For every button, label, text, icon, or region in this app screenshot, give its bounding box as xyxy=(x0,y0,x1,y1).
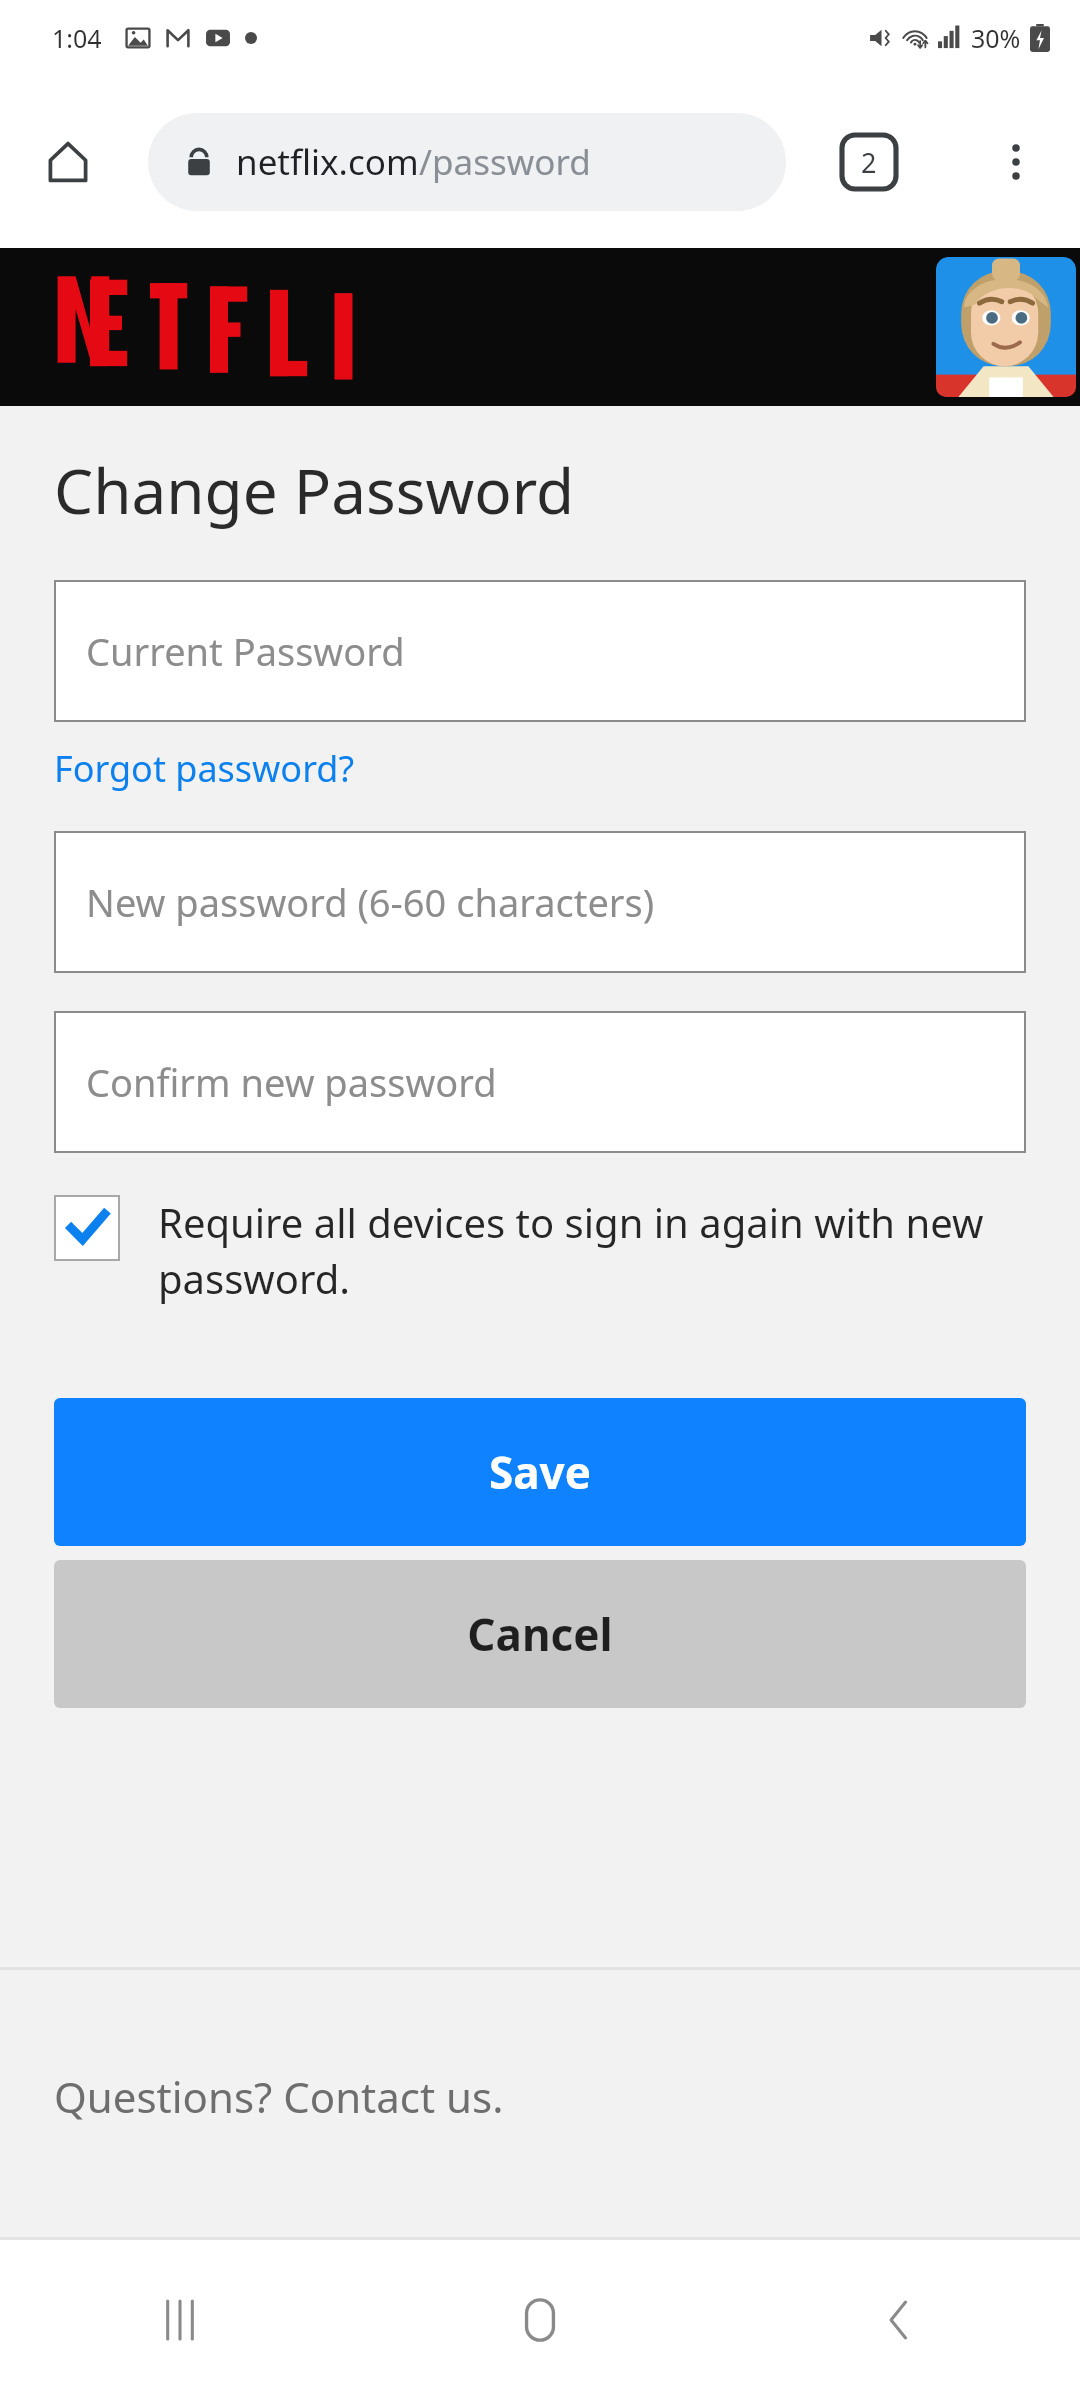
button[interactable]: Questions? Contact us. xyxy=(54,2068,504,2125)
staticText: Save xyxy=(489,1442,591,1502)
staticText: Questions? Contact us. xyxy=(54,2068,504,2125)
button[interactable]: Tabs, 2 open xyxy=(826,119,912,205)
staticText: /password xyxy=(419,138,591,186)
button[interactable]: Confirm new password xyxy=(54,1011,1026,1153)
button[interactable]: Cancel xyxy=(54,1560,1026,1708)
button[interactable]: Save xyxy=(54,1398,1026,1546)
button[interactable]: Home xyxy=(32,126,104,198)
staticText: Change Password xyxy=(54,448,575,532)
staticText: Confirm new password xyxy=(86,1056,497,1108)
button[interactable]: New password (6-60 characters) xyxy=(54,831,1026,973)
button[interactable]: Netflix home xyxy=(18,273,390,381)
button[interactable]: Recent apps xyxy=(0,2240,360,2400)
staticText: Current Password xyxy=(86,625,405,677)
button[interactable]: Current Password xyxy=(54,580,1026,722)
staticText: 2 xyxy=(861,144,877,181)
staticText: 30% xyxy=(971,21,1021,55)
staticText: New password (6-60 characters) xyxy=(86,876,655,928)
button[interactable]: Home xyxy=(360,2240,720,2400)
staticText: netflix.com xyxy=(236,138,419,186)
button[interactable]: netflix.com xyxy=(148,113,786,211)
button[interactable]: Back xyxy=(720,2240,1080,2400)
staticText: 1:04 xyxy=(52,21,102,55)
button[interactable]: Forgot password? xyxy=(54,744,355,793)
staticText: Require all devices to sign in again wit… xyxy=(158,1195,1026,1306)
staticText: Cancel xyxy=(467,1604,613,1664)
button[interactable]: More options xyxy=(976,122,1056,202)
button[interactable]: Require all devices to sign in again wit… xyxy=(54,1195,1026,1306)
button[interactable]: Account profile xyxy=(936,257,1076,397)
staticText: Forgot password? xyxy=(54,744,355,793)
